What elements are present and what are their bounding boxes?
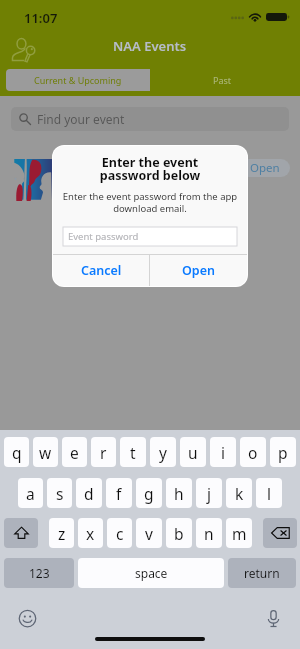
button[interactable]: r	[91, 437, 116, 467]
button[interactable]: return	[228, 558, 296, 588]
staticText: 123	[29, 565, 50, 581]
staticText: v	[145, 523, 153, 544]
button[interactable]: Event password	[63, 227, 237, 246]
button[interactable]: q	[4, 437, 29, 467]
staticText: w	[39, 442, 52, 463]
button[interactable]: n	[196, 518, 222, 548]
staticText: i	[221, 442, 225, 463]
staticText: h	[174, 483, 184, 504]
button[interactable]: j	[196, 478, 222, 508]
staticText: space	[135, 565, 168, 581]
staticText: Enter the event password below	[53, 154, 247, 183]
button[interactable]: h	[166, 478, 192, 508]
staticText: Find your event	[37, 111, 125, 127]
staticText: Open	[250, 160, 280, 176]
staticText: y	[159, 442, 167, 463]
button[interactable]: t	[120, 437, 146, 467]
staticText: Enter the event password from the app do…	[53, 190, 247, 215]
button[interactable]: l	[256, 478, 282, 508]
button[interactable]: p	[270, 437, 296, 467]
staticText: n	[204, 523, 214, 544]
button[interactable]: space	[78, 558, 224, 588]
staticText: k	[235, 483, 244, 504]
staticText: b	[174, 523, 184, 544]
staticText: o	[248, 442, 258, 463]
staticText: m	[232, 523, 247, 544]
button[interactable]: 123	[4, 558, 74, 588]
staticText: Event password	[68, 230, 139, 243]
button[interactable]: Emoji	[17, 608, 38, 628]
button[interactable]: i	[210, 437, 236, 467]
staticText: a	[26, 483, 35, 504]
button[interactable]: Find your event	[11, 107, 289, 131]
staticText: e	[70, 442, 79, 463]
staticText: Cancel	[81, 262, 122, 279]
button[interactable]: Current & Upcoming	[6, 69, 149, 91]
button[interactable]: x	[78, 518, 103, 548]
button[interactable]: z	[49, 518, 74, 548]
button[interactable]: Open	[250, 159, 280, 177]
staticText: Past	[213, 74, 232, 86]
button[interactable]: m	[226, 518, 252, 548]
staticText: l	[267, 483, 271, 504]
staticText: f	[116, 483, 122, 504]
button[interactable]: v	[136, 518, 162, 548]
staticText: c	[116, 523, 124, 544]
button[interactable]: Past	[150, 69, 294, 91]
staticText: return	[244, 565, 280, 581]
button[interactable]: Log in	[8, 34, 40, 66]
staticText: q	[12, 442, 22, 463]
staticText: Current & Upcoming	[34, 74, 122, 86]
staticText: r	[100, 442, 107, 463]
button[interactable]: d	[76, 478, 102, 508]
button[interactable]: a	[18, 478, 43, 508]
staticText: z	[58, 523, 66, 544]
button[interactable]: y	[150, 437, 176, 467]
button[interactable]: Open	[150, 255, 247, 286]
button[interactable]: Shift	[4, 518, 38, 548]
button[interactable]: c	[107, 518, 132, 548]
button[interactable]: b	[166, 518, 192, 548]
staticText: d	[84, 483, 94, 504]
staticText: j	[207, 483, 211, 504]
staticText: Open	[182, 262, 215, 279]
button[interactable]: s	[47, 478, 72, 508]
staticText: x	[86, 523, 95, 544]
staticText: 11:07	[24, 9, 58, 27]
staticText: u	[188, 442, 198, 463]
button[interactable]: u	[180, 437, 206, 467]
staticText: t	[130, 442, 136, 463]
button[interactable]: k	[226, 478, 252, 508]
staticText: s	[56, 483, 64, 504]
button[interactable]: Dictation	[263, 608, 284, 628]
staticText: p	[278, 442, 288, 463]
button[interactable]: o	[240, 437, 266, 467]
button[interactable]: Open	[0, 138, 300, 208]
button[interactable]: e	[62, 437, 87, 467]
button[interactable]: g	[136, 478, 162, 508]
button[interactable]: w	[33, 437, 58, 467]
button[interactable]: Cancel	[53, 255, 149, 286]
button[interactable]: f	[106, 478, 132, 508]
staticText: NAA Events	[113, 37, 187, 55]
staticText: g	[144, 483, 154, 504]
button[interactable]: Backspace	[263, 518, 297, 548]
